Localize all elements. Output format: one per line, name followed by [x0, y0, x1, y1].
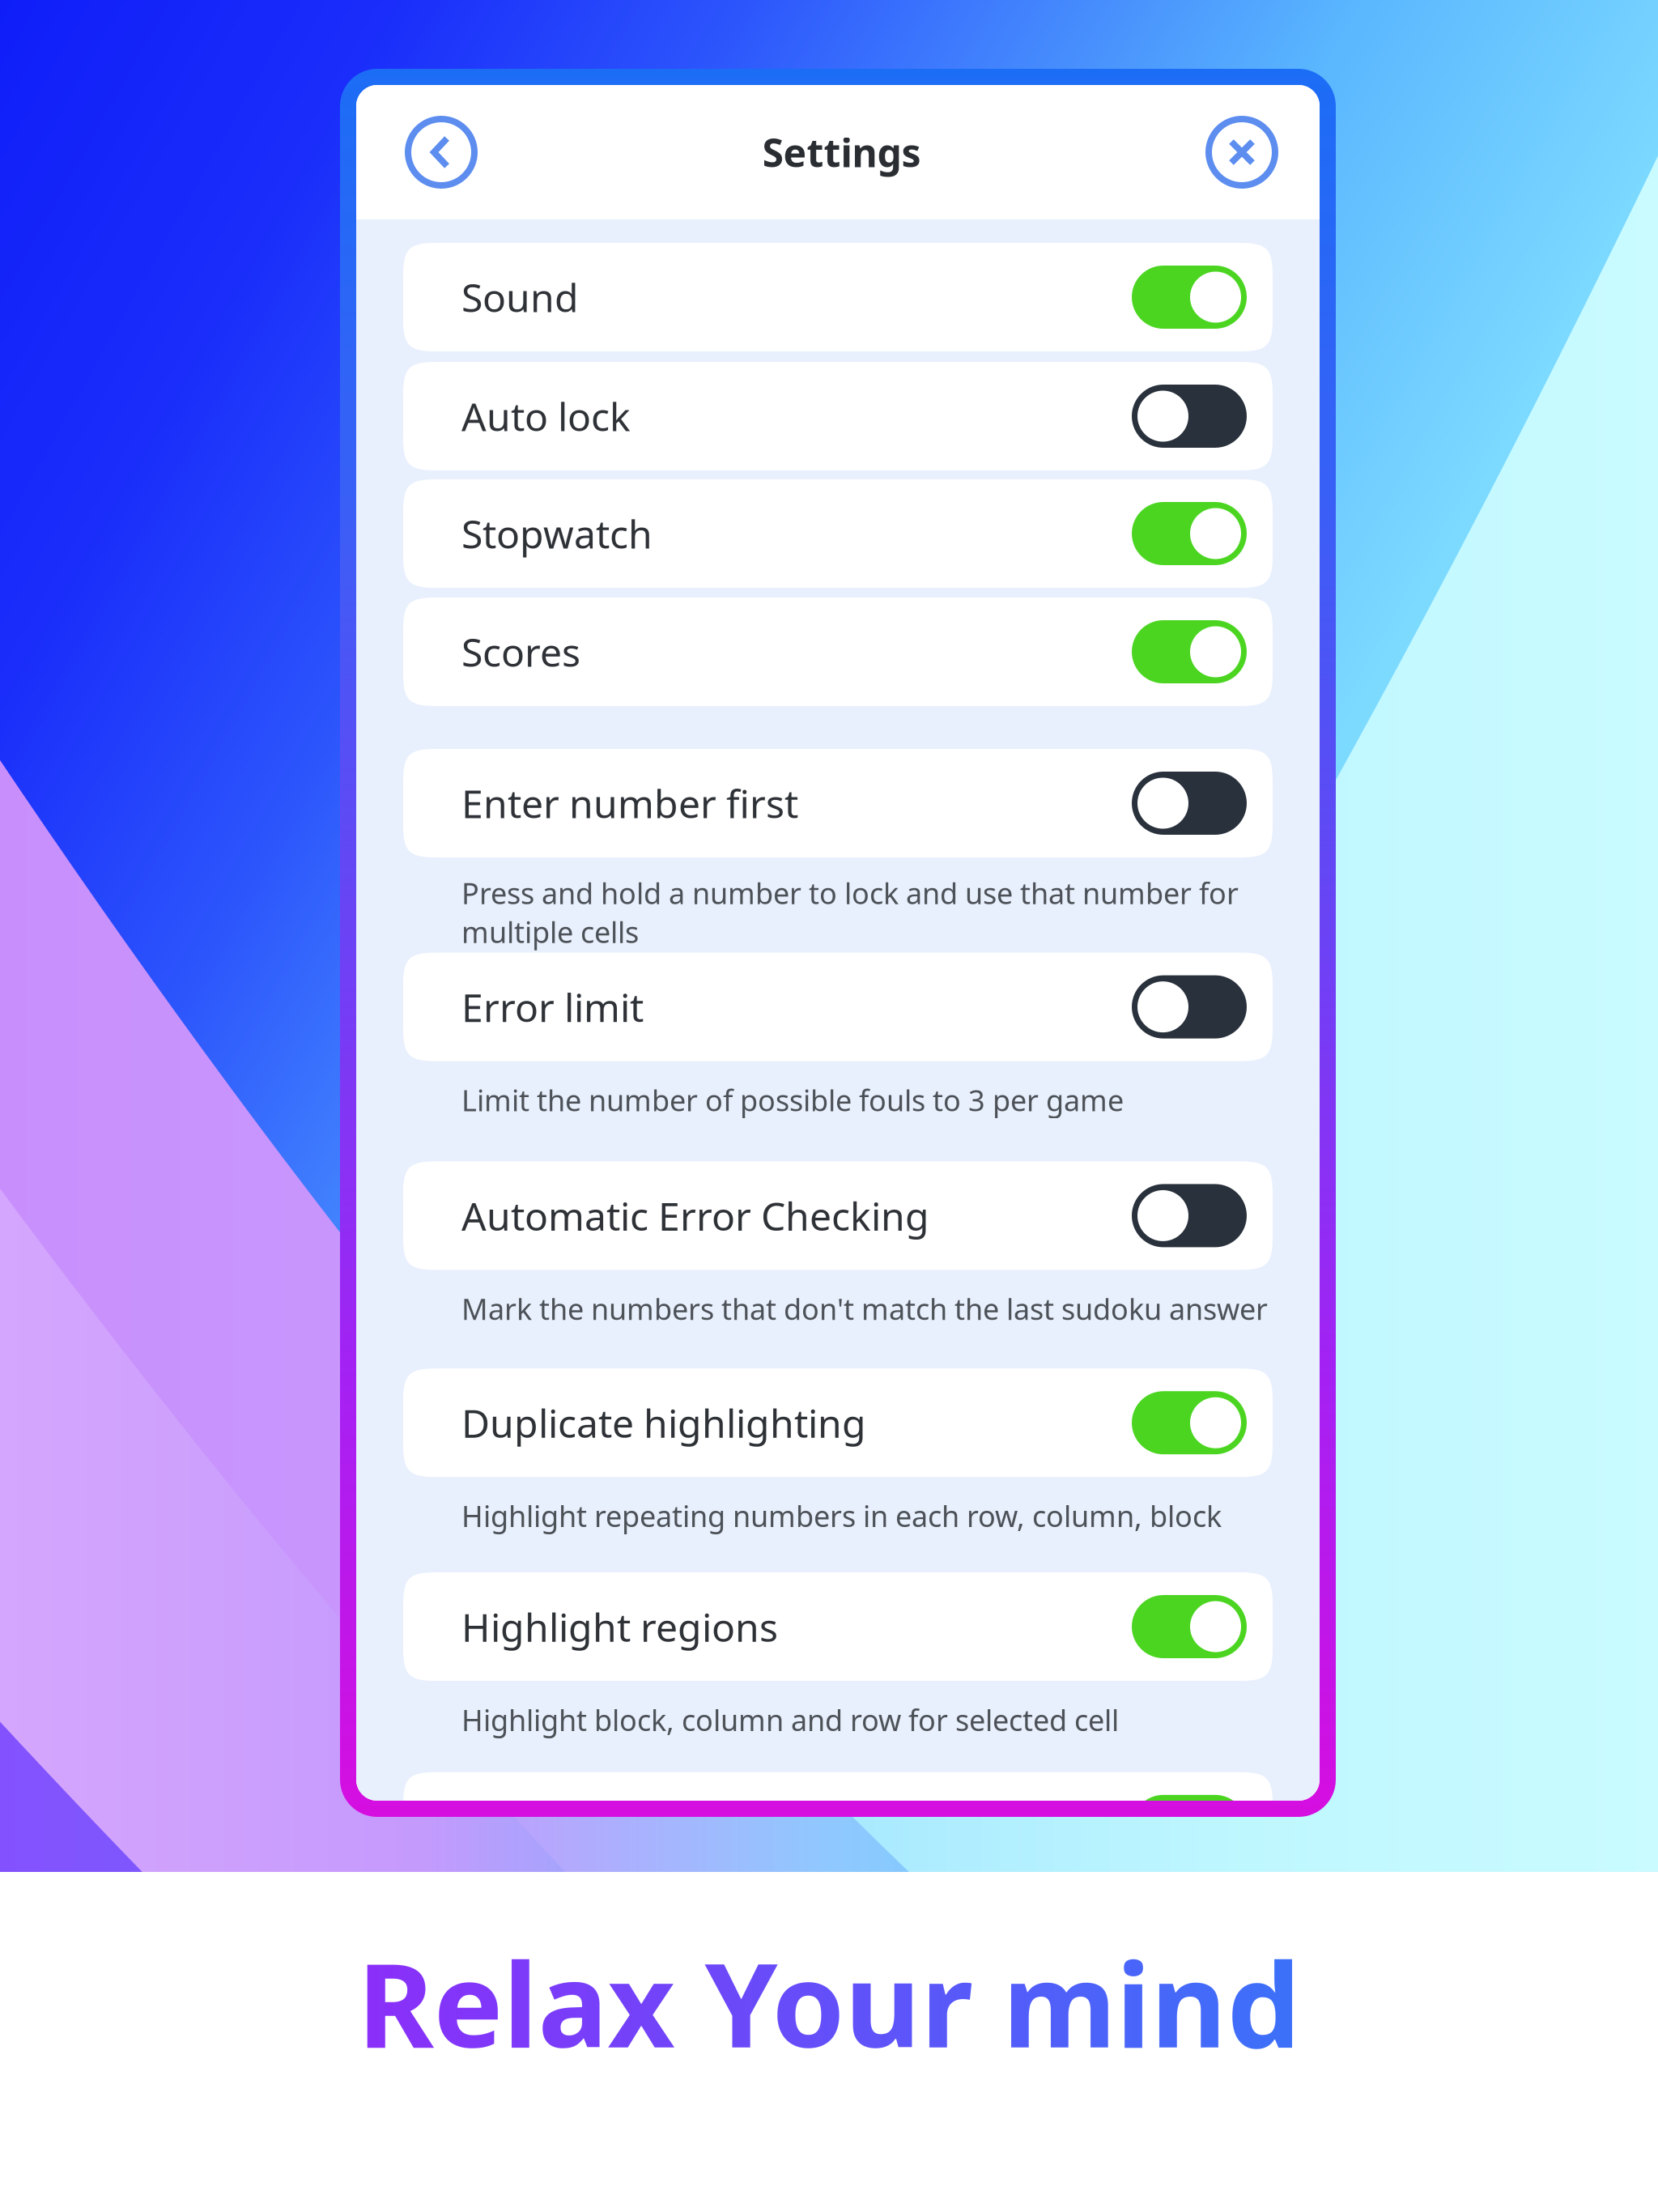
staticText: Error limit [461, 981, 644, 1033]
button[interactable]: Enter number first [403, 749, 1273, 857]
button[interactable]: Back [405, 116, 478, 189]
staticText: Stopwatch [461, 508, 653, 559]
button[interactable]: Auto lock [403, 362, 1273, 470]
staticText: Highlight block, column and row for sele… [461, 1700, 1119, 1739]
staticText: Timer [461, 1801, 568, 1852]
staticText: Limit the number of possible fouls to 3 … [461, 1081, 1124, 1119]
staticText: Duplicate highlighting [461, 1397, 866, 1449]
staticText: Settings [762, 126, 921, 178]
button[interactable]: Stopwatch [403, 479, 1273, 588]
button[interactable]: Timer [403, 1772, 1273, 1881]
staticText: Enter number first [461, 777, 798, 829]
button[interactable]: Error limit [403, 953, 1273, 1061]
button[interactable]: Scores [403, 598, 1273, 706]
button[interactable]: Automatic Error Checking [403, 1161, 1273, 1270]
button[interactable]: Sound [403, 243, 1273, 351]
staticText: Mark the numbers that don't match the la… [461, 1289, 1268, 1328]
button[interactable]: Highlight regions [403, 1572, 1273, 1681]
staticText: Sound [461, 271, 579, 323]
staticText: Auto lock [461, 390, 631, 442]
staticText: Highlight regions [461, 1601, 778, 1652]
staticText: Highlight repeating numbers in each row,… [461, 1496, 1222, 1535]
button[interactable]: Duplicate highlighting [403, 1368, 1273, 1477]
button[interactable]: Close [1205, 116, 1278, 189]
staticText: Scores [461, 626, 580, 678]
staticText: Automatic Error Checking [461, 1190, 929, 1241]
staticText: Press and hold a number to lock and use … [461, 874, 1239, 951]
